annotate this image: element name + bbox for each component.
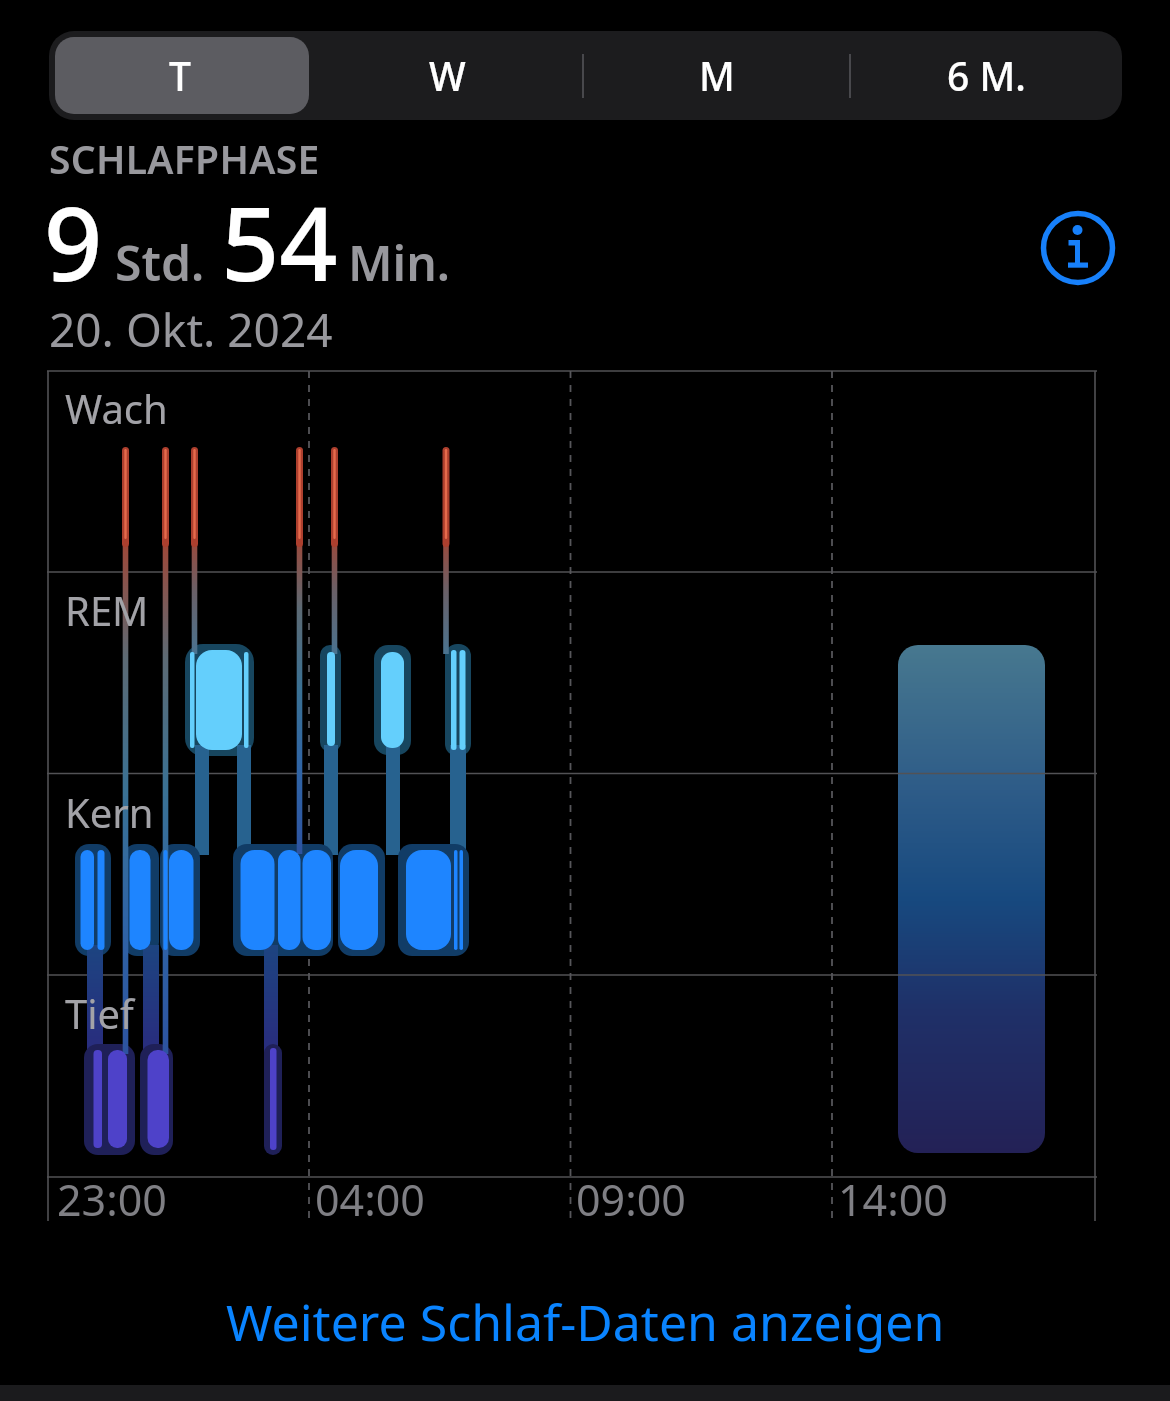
staticText: 14:00 bbox=[838, 1170, 948, 1229]
staticText: M bbox=[699, 49, 735, 102]
staticText: 23:00 bbox=[57, 1170, 167, 1229]
staticText: 20. Okt. 2024 bbox=[49, 298, 333, 361]
staticText: Weitere Schlaf-Daten anzeigen bbox=[226, 1288, 945, 1356]
staticText: Min. bbox=[348, 230, 451, 295]
button[interactable]: W bbox=[311, 31, 583, 120]
staticText: 6 M. bbox=[947, 49, 1026, 102]
button[interactable] bbox=[1040, 210, 1116, 286]
button[interactable]: Weitere Schlaf-Daten anzeigen bbox=[226, 1288, 945, 1356]
button[interactable]: T bbox=[49, 31, 311, 120]
staticText: REM bbox=[65, 583, 149, 637]
button[interactable]: M bbox=[583, 31, 850, 120]
staticText: T bbox=[169, 49, 191, 102]
staticText: Kern bbox=[65, 785, 154, 839]
staticText: 54 bbox=[221, 172, 338, 311]
button[interactable]: 6 M. bbox=[850, 31, 1122, 120]
staticText: SCHLAFPHASE bbox=[49, 132, 320, 185]
staticText: 9 bbox=[44, 172, 103, 311]
staticText: Tief bbox=[65, 986, 134, 1040]
staticText: W bbox=[429, 49, 466, 102]
staticText: 09:00 bbox=[576, 1170, 686, 1229]
staticText: 04:00 bbox=[315, 1170, 425, 1229]
staticText: Wach bbox=[65, 381, 168, 435]
staticText: Std. bbox=[115, 230, 205, 295]
